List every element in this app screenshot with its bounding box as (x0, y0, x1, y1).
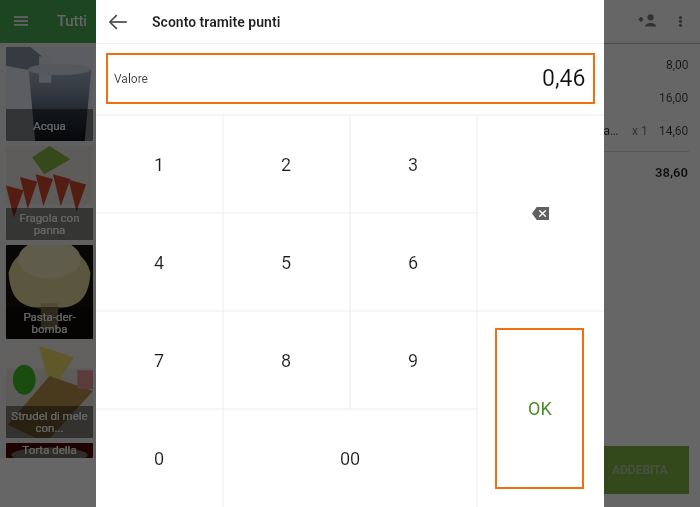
button[interactable]: 00 (223, 409, 477, 507)
button[interactable]: 5 (223, 213, 350, 311)
button[interactable]: Torta della nonna (6, 443, 93, 458)
staticText: Sconto tramite punti (152, 14, 281, 30)
button[interactable]: 3 (350, 115, 477, 213)
staticText: 3 (408, 154, 419, 175)
button[interactable]: Back (96, 0, 139, 43)
button[interactable]: 2 (223, 115, 350, 213)
staticText: OK (528, 398, 552, 419)
staticText: 8 (281, 350, 292, 371)
staticText: 7 (154, 350, 165, 371)
staticText: Valore (114, 72, 148, 86)
button[interactable]: 9 (350, 311, 477, 409)
button[interactable]: 6 (350, 213, 477, 311)
staticText: 0,46 (542, 65, 586, 92)
staticText: 38,60 (655, 165, 689, 180)
staticText: Tutti gli articoli (57, 12, 100, 30)
staticText: 4 (154, 252, 165, 273)
button[interactable]: 7 (96, 311, 223, 409)
staticText: Pasta-der-bomba (6, 310, 93, 336)
staticText: Fragola con panna (112, 90, 215, 105)
button[interactable]: Fragola con panna (6, 146, 93, 240)
staticText: 5 (281, 252, 292, 273)
staticText: ADDEBITA (612, 463, 668, 477)
button[interactable]: Backspace (477, 115, 604, 311)
staticText: 1 (154, 154, 165, 175)
staticText: Acqua (33, 119, 66, 132)
staticText: x 1 (632, 124, 648, 138)
staticText: 9 (408, 350, 419, 371)
staticText: 14,60 (659, 124, 689, 138)
button[interactable]: 1 (96, 115, 223, 213)
staticText: 16,00 (659, 91, 689, 105)
staticText: Strudel di mele con... (6, 409, 93, 435)
staticText: Strudel di mele con gelato alla vaniglia… (112, 123, 625, 138)
button[interactable]: OK (495, 328, 584, 489)
button[interactable]: 4 (96, 213, 223, 311)
staticText: 0 (154, 448, 165, 469)
button[interactable]: ADDEBITA (591, 446, 689, 494)
staticText: 6 (408, 252, 419, 273)
button[interactable]: 8 (223, 311, 350, 409)
button[interactable]: Valore (106, 53, 595, 104)
staticText: 00 (340, 448, 361, 469)
staticText: x 2 (222, 91, 238, 105)
button[interactable]: 0 (96, 409, 223, 507)
button[interactable]: Acqua (6, 47, 93, 141)
staticText: 8,00 (666, 58, 689, 72)
button[interactable]: Navigation menu (0, 0, 42, 42)
staticText: 2 (281, 154, 292, 175)
button[interactable]: Add customer (617, 0, 661, 43)
staticText: Torta della nonna (6, 443, 93, 458)
button[interactable]: More options (661, 0, 700, 43)
button[interactable]: Pasta-der-bomba (6, 245, 93, 339)
button[interactable]: Strudel di mele con... (6, 344, 93, 438)
staticText: Fragola con panna (6, 211, 93, 237)
